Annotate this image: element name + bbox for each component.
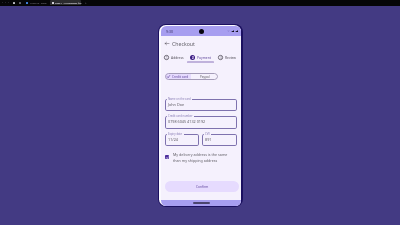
staticText: Credit card: [172, 75, 189, 79]
staticText: Address: [171, 55, 184, 59]
staticText: 891: [205, 137, 212, 142]
staticText: CVV: [205, 132, 210, 136]
button[interactable]: Paypal: [191, 73, 218, 80]
staticText: Payment: [197, 55, 211, 59]
staticText: UI Kit v3 - Shop: [30, 2, 47, 5]
button[interactable]: Credit card: [165, 73, 191, 80]
staticText: Confirm: [196, 185, 209, 189]
button[interactable]: Confirm: [165, 181, 239, 192]
staticText: 0798 6045 4132 0192: [168, 119, 206, 124]
staticText: 2: [192, 56, 194, 60]
staticText: Page 1 - UI Redesign MK: [55, 2, 82, 5]
button[interactable]: 3: [214, 52, 241, 62]
staticText: 9:30: [166, 29, 173, 34]
staticText: ×: [78, 1, 80, 5]
staticText: 3: [220, 56, 222, 60]
staticText: 11/24: [168, 137, 178, 142]
button[interactable]: 1: [161, 52, 187, 62]
staticText: Credit card number: [168, 114, 193, 118]
staticText: +: [85, 1, 87, 5]
staticText: Expiry date: [168, 132, 183, 136]
button[interactable]: 2: [187, 52, 214, 62]
staticText: Checkout: [172, 40, 195, 47]
button[interactable]: Back: [163, 40, 170, 47]
staticText: Name on the card: [168, 97, 191, 101]
staticText: Review: [225, 55, 237, 59]
button[interactable]: My delivery address is the same than my …: [165, 151, 235, 163]
staticText: 1: [166, 56, 168, 60]
staticText: My delivery address is the same than my …: [173, 152, 228, 163]
staticText: Paypal: [200, 75, 210, 79]
staticText: John Doe: [168, 102, 185, 107]
